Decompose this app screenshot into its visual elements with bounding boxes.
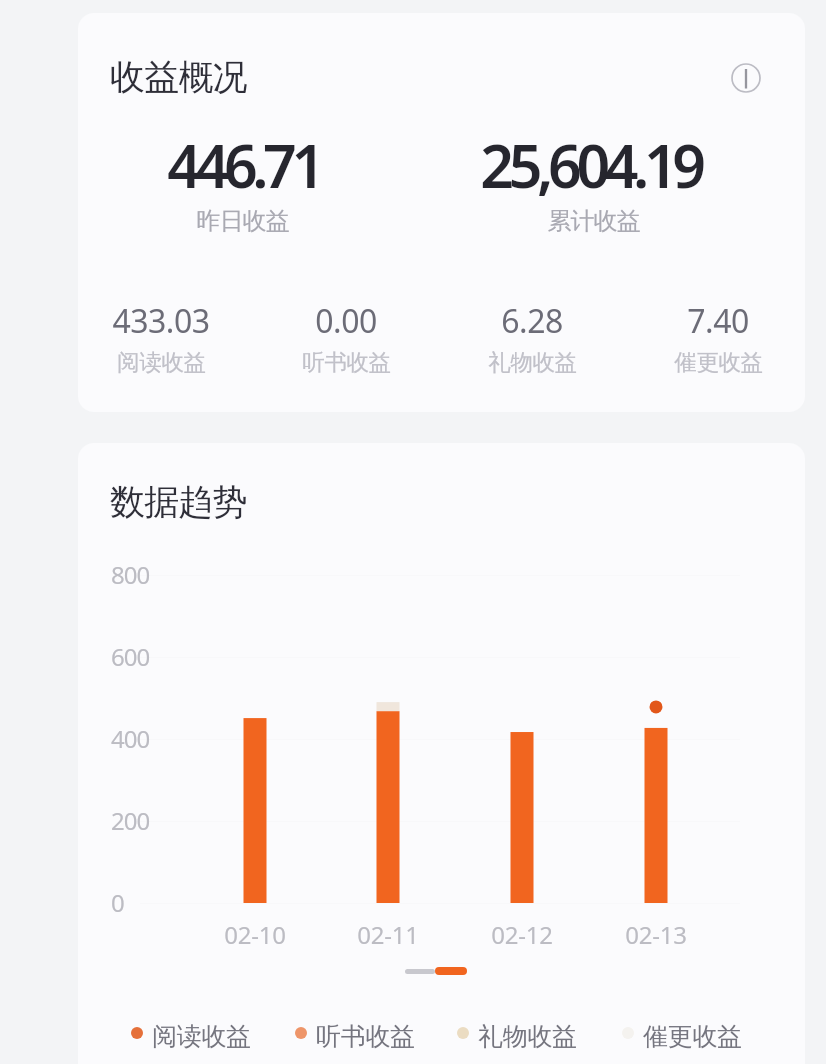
staticText: 02-11 <box>357 918 419 951</box>
staticText: 催更收益 <box>674 348 763 376</box>
staticText: 催更收益 <box>643 1021 742 1052</box>
staticText: 听书收益 <box>302 348 391 376</box>
staticText: 数据趋势 <box>110 480 247 524</box>
staticText: 听书收益 <box>316 1021 415 1052</box>
staticText: 800 <box>111 558 150 591</box>
button[interactable]: 听书收益 <box>295 1021 415 1052</box>
button[interactable]: 阅读收益 <box>131 1021 251 1052</box>
button[interactable]: 收益概况 <box>78 13 805 412</box>
staticText: 收益概况 <box>110 55 247 99</box>
staticText: 200 <box>111 804 150 837</box>
staticText: 累计收益 <box>548 206 640 236</box>
staticText: 446.71 <box>167 125 320 205</box>
staticText: 7.40 <box>687 299 749 343</box>
staticText: 433.03 <box>112 299 210 343</box>
staticText: 0 <box>111 886 124 919</box>
staticText: 02-13 <box>625 918 687 951</box>
staticText: 礼物收益 <box>488 348 577 376</box>
staticText: 阅读收益 <box>117 348 206 376</box>
staticText: 礼物收益 <box>478 1021 577 1052</box>
button[interactable]: 数据趋势 <box>78 443 805 1064</box>
staticText: 6.28 <box>501 299 563 343</box>
staticText: 阅读收益 <box>152 1021 251 1052</box>
staticText: 0.00 <box>315 299 377 343</box>
staticText: 02-10 <box>224 918 286 951</box>
button[interactable]: 催更收益 <box>622 1021 742 1052</box>
staticText: 02-12 <box>491 918 553 951</box>
button[interactable]: Info <box>723 55 769 101</box>
button[interactable]: 礼物收益 <box>457 1021 577 1052</box>
staticText: 400 <box>111 722 150 755</box>
staticText: 昨日收益 <box>197 206 289 236</box>
staticText: 25,604.19 <box>480 125 701 205</box>
staticText: 600 <box>111 640 150 673</box>
